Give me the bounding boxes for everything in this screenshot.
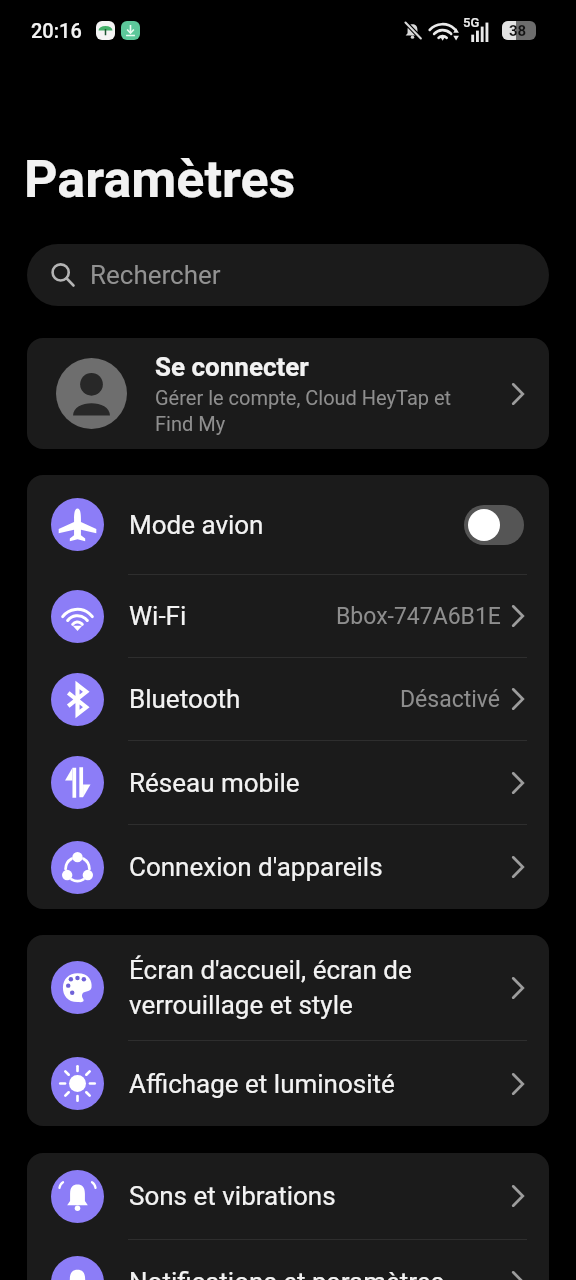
staticText: Bluetooth	[129, 684, 400, 714]
staticText: Désactivé	[400, 686, 501, 713]
staticText: Connexion d'appareils	[129, 852, 512, 882]
staticText: Notifications et paramètres	[129, 1267, 512, 1280]
button[interactable]: Sons et vibrations	[27, 1153, 549, 1239]
staticText: Paramètres	[24, 149, 296, 210]
other: Wi-Fi	[432, 20, 460, 42]
button[interactable]: Mode avion toggle	[464, 505, 524, 545]
button[interactable]: Bluetooth	[27, 658, 549, 740]
other: Silent	[403, 21, 422, 40]
button[interactable]: Affichage et luminosité	[27, 1041, 549, 1126]
button[interactable]: Notifications et paramètres	[27, 1240, 549, 1280]
staticText: Gérer le compte, Cloud HeyTap et Find My	[155, 386, 452, 435]
staticText: Écran d'accueil, écran de verrouillage e…	[129, 955, 512, 1020]
staticText: 20:16	[31, 19, 82, 42]
staticText: Se connecter	[155, 352, 309, 382]
button[interactable]: Réseau mobile	[27, 741, 549, 824]
button[interactable]: Écran d'accueil, écran de verrouillage e…	[27, 935, 549, 1040]
button[interactable]: Se connecter	[27, 338, 549, 449]
staticText: Affichage et luminosité	[129, 1069, 512, 1099]
staticText: Mode avion	[129, 510, 464, 540]
button[interactable]: Mode avion	[27, 475, 549, 574]
staticText: 38	[509, 22, 527, 40]
staticText: Bbox-747A6B1E	[336, 603, 501, 630]
staticText: Wi-Fi	[129, 601, 336, 631]
staticText: 5G	[463, 15, 480, 30]
other: 5G signal	[467, 19, 492, 42]
button[interactable]: Wi-Fi	[27, 575, 549, 657]
staticText: Réseau mobile	[129, 768, 512, 798]
staticText: Sons et vibrations	[129, 1181, 512, 1211]
button[interactable]: Rechercher	[27, 244, 549, 306]
staticText: Rechercher	[90, 260, 221, 290]
button[interactable]: Connexion d'appareils	[27, 825, 549, 909]
